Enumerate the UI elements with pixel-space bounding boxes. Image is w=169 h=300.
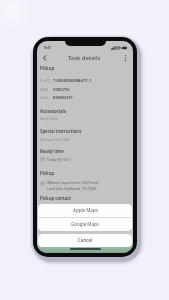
staticText: 85686U31	[53, 95, 73, 101]
staticText: Cancel	[78, 237, 93, 243]
staticText: Accessorials	[40, 108, 66, 114]
staticText: Task details	[68, 54, 101, 62]
staticText: Pickup	[40, 65, 55, 71]
staticText: Order	[40, 96, 53, 100]
staticText: Pickup contact	[40, 195, 72, 201]
button[interactable]: Back	[39, 52, 50, 63]
button[interactable]: Cancel	[38, 234, 132, 247]
staticText: Trip ID	[40, 79, 53, 83]
staticText: Apple Maps	[73, 207, 98, 213]
staticText: 9:41	[44, 45, 52, 50]
staticText: Ready time	[40, 148, 64, 154]
staticText: Google Maps	[71, 221, 99, 227]
staticText: Pickup	[40, 170, 55, 176]
button[interactable]: Google Maps	[38, 218, 132, 231]
staticText: Special instructions	[40, 128, 82, 134]
staticText: T-0000000084471-1	[53, 78, 92, 84]
staticText: JOB #	[40, 88, 53, 92]
staticText: Walmart Supercenter 530 Forest	[47, 180, 99, 185]
staticText: Strip Deck	[40, 116, 58, 121]
staticText: Today @ 13:15	[47, 157, 71, 162]
staticText: Land Lake Highlands, TX 75243	[47, 186, 97, 191]
button[interactable]: More options	[120, 52, 131, 63]
button[interactable]: Apple Maps	[38, 204, 132, 217]
staticText: No more for 8 AM	[40, 137, 70, 142]
staticText: 5005755	[53, 87, 70, 93]
